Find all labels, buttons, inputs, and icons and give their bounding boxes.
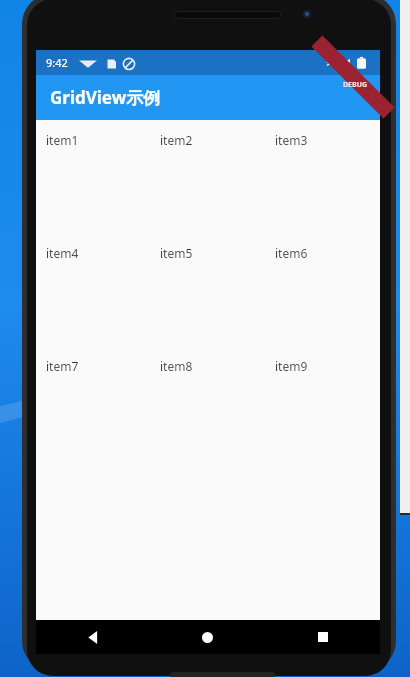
staticText: item7 — [46, 358, 79, 374]
staticText: item2 — [160, 132, 193, 148]
button[interactable]: Recent apps — [265, 620, 380, 654]
button[interactable]: item8 — [150, 346, 265, 459]
staticText: item3 — [275, 132, 308, 148]
staticText: item4 — [46, 245, 79, 261]
staticText: item9 — [275, 358, 308, 374]
button[interactable]: item6 — [265, 233, 380, 346]
staticText: GridView示例 — [50, 86, 161, 109]
staticText: item1 — [46, 132, 79, 148]
button[interactable]: item3 — [265, 120, 380, 233]
staticText: item5 — [160, 245, 193, 261]
button[interactable]: item9 — [265, 346, 380, 459]
staticText: 9:42 — [46, 55, 68, 70]
button[interactable]: item2 — [150, 120, 265, 233]
button[interactable]: item7 — [36, 346, 150, 459]
staticText: DEBUG — [343, 80, 368, 90]
button[interactable]: Back — [36, 620, 150, 654]
staticText: item6 — [275, 245, 308, 261]
button[interactable]: item5 — [150, 233, 265, 346]
button[interactable]: item1 — [36, 120, 150, 233]
staticText: item8 — [160, 358, 193, 374]
button[interactable]: Home — [150, 620, 265, 654]
button[interactable]: item4 — [36, 233, 150, 346]
